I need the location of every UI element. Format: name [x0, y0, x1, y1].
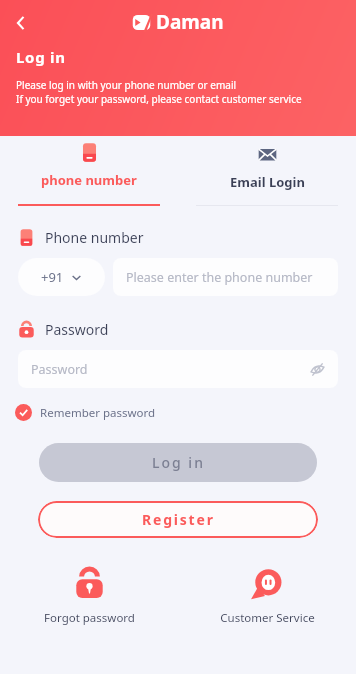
button[interactable]: Customer Service	[178, 567, 356, 626]
staticText: Please enter the phone number	[126, 269, 313, 286]
button[interactable]: Please enter the phone number	[113, 258, 338, 296]
staticText: Forgot password	[44, 610, 135, 626]
staticText: Register	[142, 510, 215, 529]
staticText: phone number	[41, 171, 137, 189]
staticText: Password	[31, 361, 88, 378]
staticText: Remember password	[40, 405, 156, 421]
button[interactable]: Remember password	[15, 404, 156, 421]
staticText: Please log in with your phone number or …	[16, 78, 237, 92]
button[interactable]: Show password	[306, 358, 328, 380]
button[interactable]: Back	[4, 6, 38, 40]
staticText: +91	[41, 268, 64, 286]
staticText: Daman	[156, 9, 224, 35]
button[interactable]: Log in	[39, 443, 317, 482]
button[interactable]: Email Login	[178, 136, 356, 206]
staticText: Password	[45, 320, 109, 339]
staticText: Customer Service	[220, 610, 315, 626]
staticText: Log in	[152, 453, 205, 472]
staticText: If you forget your password, please cont…	[16, 92, 302, 106]
button[interactable]: Forgot password	[0, 567, 178, 626]
button[interactable]: +91	[18, 258, 105, 296]
staticText: Phone number	[45, 228, 144, 247]
staticText: Email Login	[230, 173, 305, 191]
button[interactable]: phone number	[0, 136, 178, 206]
staticText: Log in	[16, 47, 66, 67]
button[interactable]: Password	[18, 350, 338, 388]
button[interactable]: Register	[38, 501, 318, 538]
